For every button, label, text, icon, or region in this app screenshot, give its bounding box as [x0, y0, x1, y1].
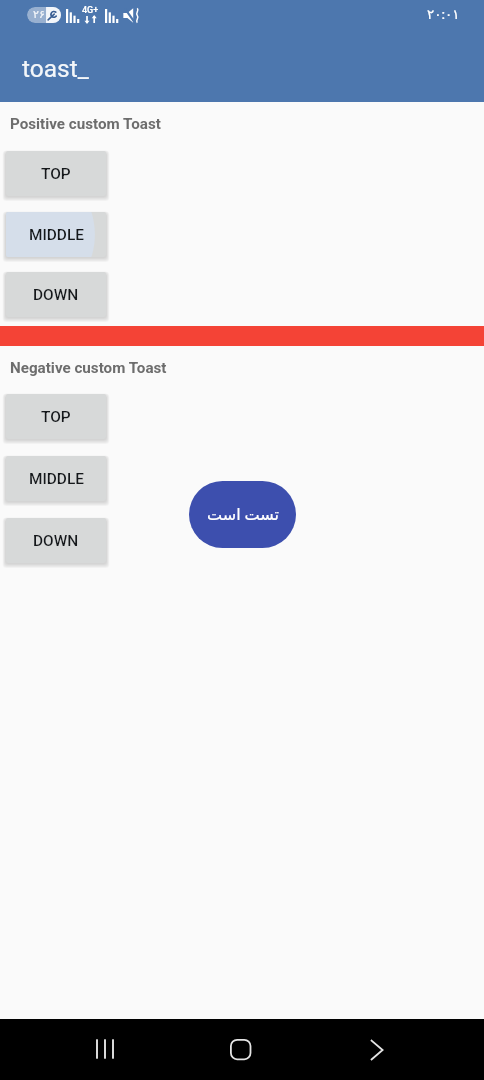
staticText: DOWN — [33, 532, 79, 550]
staticText: MIDDLE — [29, 226, 84, 244]
staticText: TOP — [41, 408, 71, 426]
button[interactable]: Recent apps — [44, 1019, 166, 1080]
button[interactable]: DOWN — [6, 272, 106, 317]
button[interactable]: Back — [316, 1019, 437, 1080]
button[interactable]: TOP — [6, 151, 106, 196]
staticText: DOWN — [33, 286, 79, 304]
button[interactable]: MIDDLE — [6, 456, 106, 501]
staticText: MIDDLE — [29, 470, 84, 488]
staticText: TOP — [41, 165, 71, 183]
button[interactable]: DOWN — [6, 518, 106, 563]
staticText: Negative custom Toast — [10, 359, 167, 377]
staticText: 4G+ — [82, 5, 99, 16]
staticText: Positive custom Toast — [10, 115, 161, 133]
staticText: toast_ — [22, 54, 89, 83]
button[interactable]: Home — [180, 1019, 301, 1080]
staticText: ۲۰:۰۱ — [427, 6, 460, 22]
button[interactable]: MIDDLE — [6, 212, 106, 257]
staticText: تست است — [207, 505, 279, 524]
staticText: ۲۶ — [33, 8, 45, 21]
button[interactable]: TOP — [6, 394, 106, 439]
